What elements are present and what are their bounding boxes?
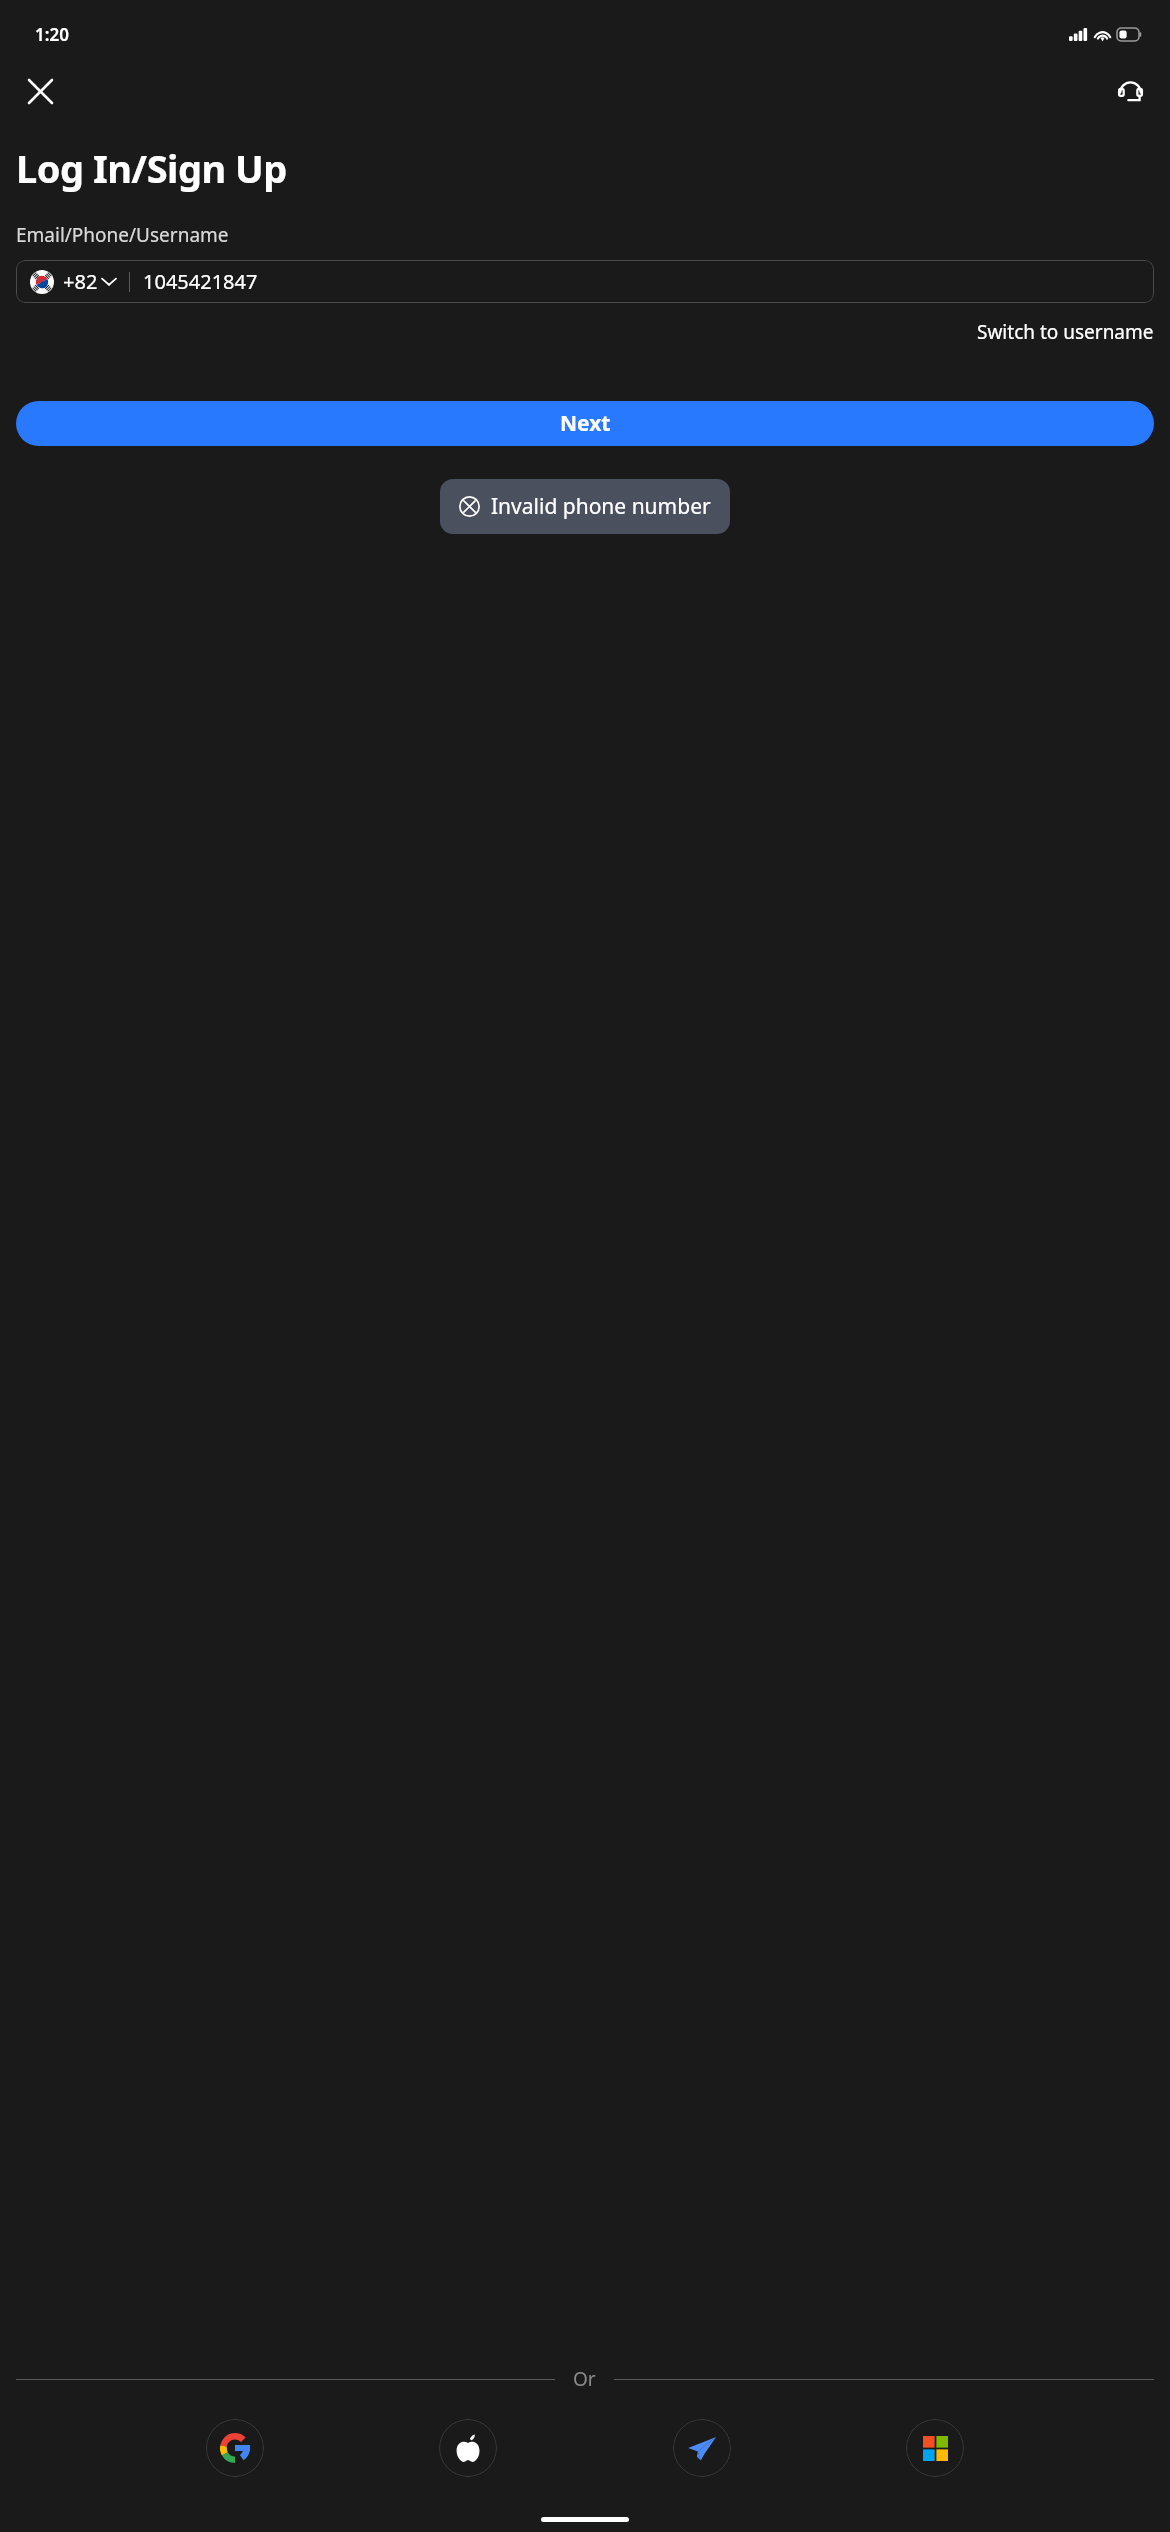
staticText: Switch to username xyxy=(977,319,1154,345)
button[interactable]: +82 xyxy=(16,260,1154,303)
button[interactable]: Sign in with Telegram xyxy=(673,2419,731,2477)
staticText: Email/Phone/Username xyxy=(16,222,229,248)
staticText: Invalid phone number xyxy=(491,492,711,521)
button[interactable]: Sign in with Microsoft xyxy=(906,2419,964,2477)
staticText: Log In/Sign Up xyxy=(16,142,287,194)
button[interactable]: Close xyxy=(16,67,64,115)
staticText: 1045421847 xyxy=(143,268,258,295)
button[interactable]: Next xyxy=(16,401,1154,446)
button[interactable]: Switch to username xyxy=(971,315,1160,349)
staticText: Or xyxy=(573,2366,596,2392)
staticText: +82 xyxy=(63,268,98,295)
staticText: Next xyxy=(560,409,611,438)
button[interactable]: Customer support xyxy=(1106,67,1154,115)
button[interactable]: Sign in with Google xyxy=(206,2419,264,2477)
button[interactable]: Sign in with Apple xyxy=(439,2419,497,2477)
staticText: 1:20 xyxy=(35,23,69,46)
